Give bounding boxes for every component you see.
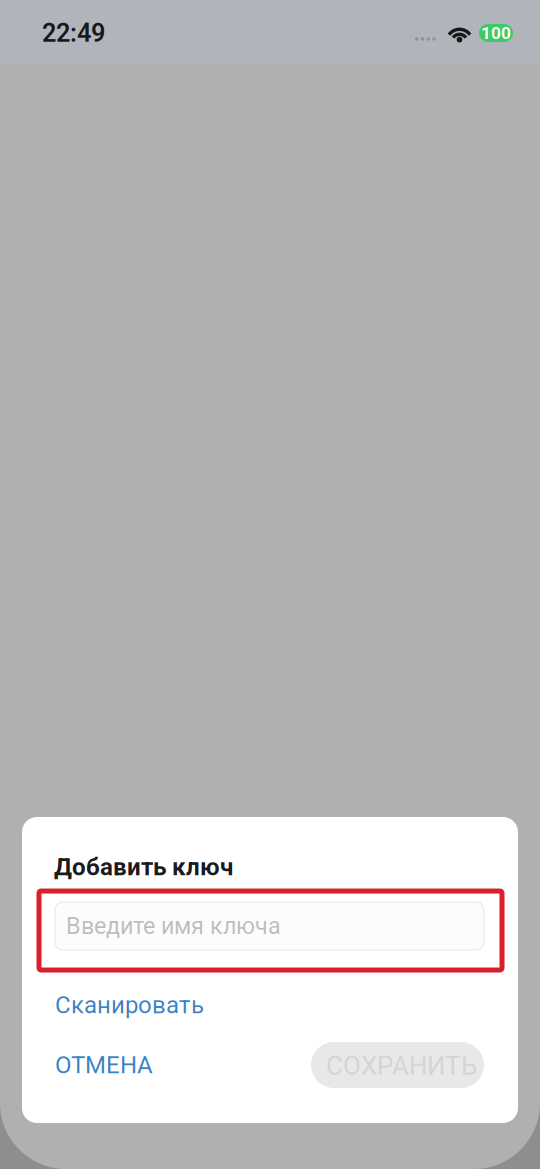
button[interactable]: ОТМЕНА <box>55 1042 205 1088</box>
button[interactable]: СОХРАНИТЬ <box>311 1042 484 1088</box>
staticText: 100 <box>481 23 511 43</box>
button[interactable]: Сканировать <box>55 986 255 1024</box>
staticText: ОТМЕНА <box>55 1051 153 1079</box>
staticText: 22:49 <box>42 18 105 48</box>
staticText: Сканировать <box>55 991 204 1019</box>
staticText: СОХРАНИТЬ <box>326 1051 477 1081</box>
staticText: Добавить ключ <box>54 853 233 881</box>
button[interactable]: Введите имя ключа <box>55 902 484 950</box>
staticText: Введите имя ключа <box>66 912 281 940</box>
